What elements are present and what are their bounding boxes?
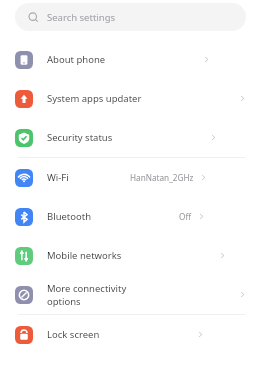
button[interactable]: About phone [0,40,261,79]
button[interactable]: Bluetooth [0,197,261,236]
button[interactable]: Wi-Fi [0,158,261,197]
staticText: System apps updater [47,92,142,105]
other: Mobile networks [15,247,33,265]
staticText: Bluetooth [47,210,92,223]
staticText: Lock screen [47,328,100,341]
button[interactable]: Lock screen [0,315,261,354]
other: Wi-Fi [15,169,33,187]
button[interactable]: Mobile networks [0,236,261,275]
staticText: Security status [47,131,113,144]
staticText: About phone [47,53,106,66]
staticText: Wi-Fi [47,171,69,184]
staticText: HanNatan_2GHz [130,172,194,183]
other: More connectivity options [15,286,33,304]
button[interactable]: Security status [0,118,261,157]
other: Lock screen [15,326,33,344]
button[interactable]: More connectivity options [0,275,261,314]
other: About phone [15,51,33,69]
other: System apps updater [15,90,33,108]
button[interactable]: Search settings [15,3,246,31]
button[interactable]: System apps updater [0,79,261,118]
staticText: Off [179,211,192,222]
staticText: Search settings [47,11,116,24]
other: Bluetooth [15,208,33,226]
staticText: More connectivity options [47,282,142,308]
other: Security status [15,129,33,147]
staticText: Mobile networks [47,249,122,262]
